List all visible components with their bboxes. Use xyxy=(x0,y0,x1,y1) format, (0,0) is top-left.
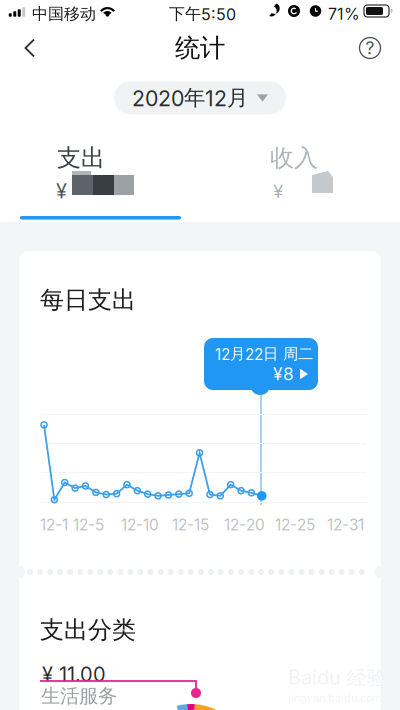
button[interactable]: 2020年12月 xyxy=(114,81,286,114)
button[interactable]: 返回 xyxy=(8,26,52,70)
staticText: 12-1 xyxy=(40,516,68,534)
staticText: 收入 xyxy=(270,143,318,173)
staticText: 下午5:50 xyxy=(169,4,236,24)
staticText: 支出 xyxy=(57,143,105,173)
staticText: ¥ 11.00 xyxy=(42,662,106,686)
staticText: 12月22日 周二 xyxy=(215,344,313,364)
staticText: ¥8 xyxy=(273,363,294,384)
staticText: 12-10 xyxy=(121,516,159,534)
staticText: 每日支出 xyxy=(40,285,136,315)
staticText: Baidu 经验 xyxy=(288,665,387,690)
staticText: 生活服务 xyxy=(41,684,117,708)
staticText: 中国移动 xyxy=(32,4,96,24)
button[interactable]: 帮助 xyxy=(348,26,392,70)
staticText: 统计 xyxy=(175,32,225,64)
staticText: 12-15 xyxy=(172,516,209,534)
staticText: ¥ xyxy=(56,179,67,203)
staticText: 12-20 xyxy=(224,516,265,534)
staticText: ? xyxy=(365,37,374,58)
staticText: 12-31 xyxy=(327,516,364,534)
staticText: 2020年12月 xyxy=(132,85,248,111)
staticText: jingyan.baidu.com xyxy=(288,691,381,704)
staticText: 支出分类 xyxy=(40,615,136,645)
staticText: 71% xyxy=(328,4,360,24)
button[interactable]: 收入 xyxy=(200,127,400,222)
button[interactable]: 支出 xyxy=(0,127,200,222)
staticText: ¥ xyxy=(273,180,283,202)
staticText: 12-5 xyxy=(73,516,104,534)
staticText: 12-25 xyxy=(275,516,315,534)
